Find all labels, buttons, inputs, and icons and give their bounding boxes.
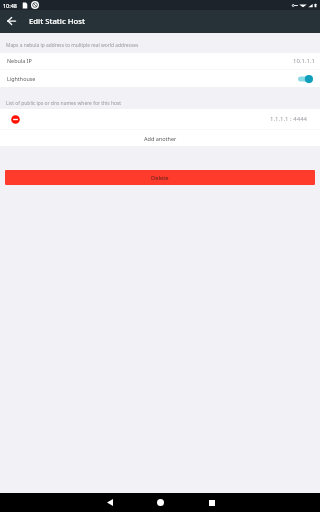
button[interactable]: Back [0,10,23,33]
button[interactable]: Remove [0,109,320,129]
button[interactable]: Nebula IP [0,53,320,69]
button[interactable]: Lighthouse [0,70,320,87]
staticText: Lighthouse [7,75,36,82]
staticText: 10:48 [3,2,17,9]
staticText: Maps a nebula ip address to multiple rea… [6,42,139,49]
staticText: Delete [151,174,169,182]
staticText: Nebula IP [7,57,32,64]
staticText: Edit Static Host [29,16,86,27]
staticText: Add another [144,135,177,142]
staticText: 10.1.1.1 [293,57,315,65]
button[interactable]: Recent apps [186,493,237,512]
staticText: List of public ips or dns names where fo… [6,100,122,107]
button[interactable]: Add another [0,130,320,146]
button[interactable]: Back [84,493,135,512]
button[interactable]: Home [135,493,186,512]
staticText: 1.1.1.1 : 4444 [270,115,308,123]
button[interactable]: Delete [5,170,315,185]
button[interactable]: Remove [10,114,21,125]
